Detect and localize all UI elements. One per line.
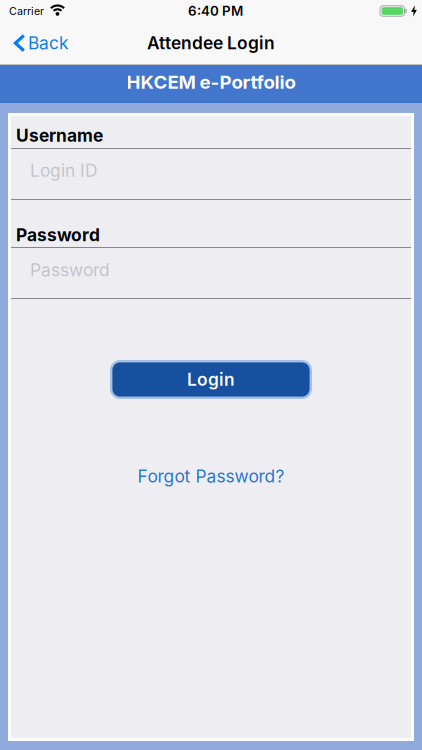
button[interactable]: Forgot Password? bbox=[137, 466, 284, 486]
staticText: Carrier bbox=[9, 5, 44, 17]
staticText: Forgot Password? bbox=[137, 466, 284, 486]
staticText: Login bbox=[187, 369, 235, 390]
staticText: Back bbox=[28, 33, 69, 53]
button[interactable]: Login bbox=[110, 360, 312, 399]
button[interactable]: Back bbox=[0, 33, 69, 53]
staticText: Username bbox=[16, 125, 103, 146]
button[interactable]: Password bbox=[11, 248, 411, 298]
staticText: Password bbox=[16, 225, 100, 245]
staticText: Password bbox=[30, 260, 110, 280]
staticText: Attendee Login bbox=[147, 33, 275, 53]
button[interactable]: Login ID bbox=[11, 149, 411, 199]
staticText: 6:40 PM bbox=[188, 3, 243, 19]
staticText: HKCEM e-Portfolio bbox=[126, 71, 295, 93]
staticText: Login ID bbox=[30, 160, 98, 181]
